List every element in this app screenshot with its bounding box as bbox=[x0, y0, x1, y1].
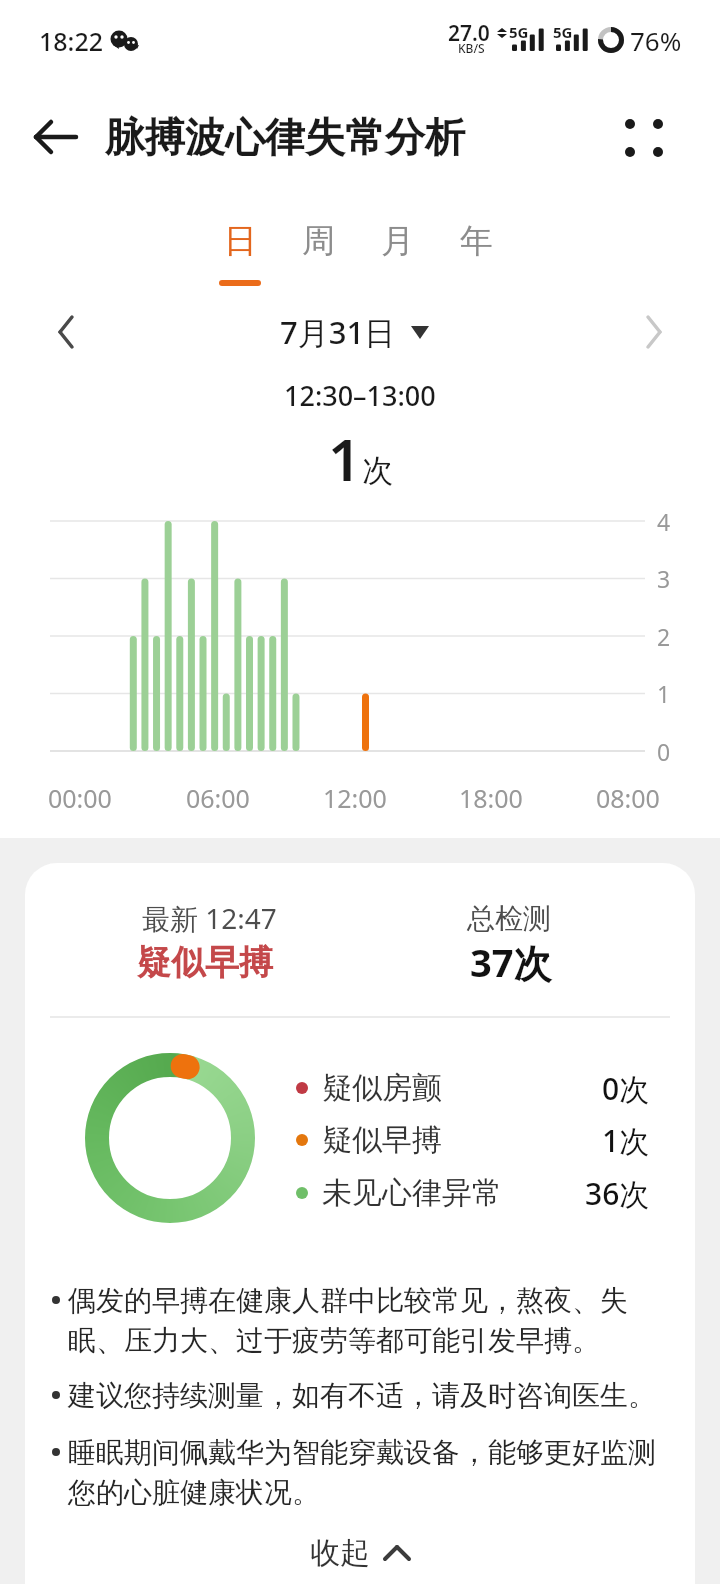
staticText: 眠、压力大、过于疲劳等都可能引发早搏。 bbox=[68, 1323, 600, 1358]
staticText: 未见心律异常 bbox=[322, 1174, 502, 1212]
staticText: 2 bbox=[657, 621, 671, 652]
staticText: 收起 bbox=[310, 1534, 370, 1572]
staticText: 06:00 bbox=[186, 781, 250, 815]
staticText: 脉搏波心律失常分析 bbox=[105, 112, 465, 162]
staticText: 总检测 bbox=[467, 901, 551, 936]
staticText: 12:00 bbox=[323, 781, 387, 815]
staticText: 1 bbox=[657, 678, 671, 709]
staticText: 5G bbox=[509, 22, 529, 42]
staticText: 27.0 bbox=[448, 19, 490, 48]
staticText: 12:30–13:00 bbox=[284, 377, 436, 414]
staticText: 疑似早搏 bbox=[322, 1121, 442, 1159]
staticText: 76% bbox=[630, 23, 682, 58]
staticText: 5G bbox=[553, 22, 573, 42]
staticText: 最新 12:47 bbox=[142, 899, 277, 937]
staticText: 1次 bbox=[602, 1120, 650, 1161]
staticText: 次 bbox=[362, 451, 393, 490]
staticText: 37次 bbox=[470, 936, 552, 988]
staticText: 偶发的早搏在健康人群中比较常见，熬夜、失 bbox=[68, 1283, 628, 1318]
staticText: 疑似房颤 bbox=[322, 1069, 442, 1107]
staticText: 月 bbox=[381, 220, 414, 262]
button[interactable] bbox=[628, 306, 680, 358]
button[interactable]: 年 bbox=[441, 211, 511, 271]
staticText: 周 bbox=[302, 220, 335, 262]
staticText: 36次 bbox=[585, 1173, 650, 1214]
button[interactable]: 7月31日 bbox=[254, 306, 454, 358]
staticText: 年 bbox=[460, 220, 493, 262]
staticText: 18:00 bbox=[459, 781, 523, 815]
button[interactable] bbox=[26, 112, 84, 162]
staticText: 疑似早搏 bbox=[137, 941, 273, 984]
button[interactable]: 月 bbox=[362, 211, 432, 271]
staticText: 0 bbox=[657, 736, 671, 767]
button[interactable] bbox=[606, 106, 682, 170]
staticText: 3 bbox=[657, 563, 671, 594]
button[interactable]: 日 bbox=[205, 211, 275, 271]
staticText: 1 bbox=[328, 419, 362, 498]
staticText: 日 bbox=[224, 220, 257, 262]
button[interactable]: 周 bbox=[283, 211, 353, 271]
staticText: 18:22 bbox=[39, 24, 104, 58]
staticText: 您的心脏健康状况。 bbox=[68, 1475, 320, 1510]
staticText: 睡眠期间佩戴华为智能穿戴设备，能够更好监测 bbox=[68, 1435, 656, 1470]
button[interactable]: 收起 bbox=[290, 1528, 430, 1578]
staticText: 08:00 bbox=[596, 781, 660, 815]
staticText: 4 bbox=[657, 506, 671, 537]
staticText: 00:00 bbox=[48, 781, 112, 815]
staticText: 建议您持续测量，如有不适，请及时咨询医生。 bbox=[68, 1378, 656, 1413]
button[interactable] bbox=[40, 306, 92, 358]
staticText: KB/S bbox=[458, 40, 485, 56]
staticText: 0次 bbox=[602, 1068, 650, 1109]
staticText: 7月31日 bbox=[280, 311, 396, 353]
